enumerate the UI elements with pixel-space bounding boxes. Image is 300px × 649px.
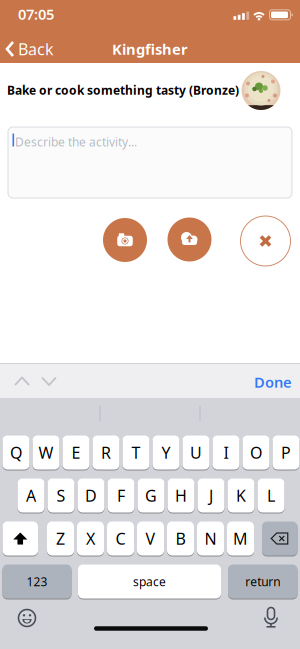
button[interactable]: O bbox=[242, 435, 269, 470]
button[interactable]: K bbox=[227, 478, 254, 513]
button[interactable]: Y bbox=[152, 435, 179, 470]
staticText: R bbox=[101, 442, 111, 463]
staticText: Back bbox=[18, 38, 54, 60]
button[interactable]: I bbox=[212, 435, 239, 470]
staticText: C bbox=[115, 528, 125, 549]
staticText: T bbox=[131, 442, 140, 463]
button[interactable]: return bbox=[228, 564, 297, 599]
staticText: Y bbox=[161, 442, 170, 463]
button[interactable]: J bbox=[197, 478, 224, 513]
button[interactable]: T bbox=[122, 435, 149, 470]
button[interactable]: Done bbox=[254, 372, 292, 392]
staticText: D bbox=[85, 485, 97, 506]
button[interactable] bbox=[261, 608, 281, 628]
staticText: Describe the activity... bbox=[15, 134, 137, 150]
button[interactable]: R bbox=[92, 435, 119, 470]
button[interactable]: H bbox=[167, 478, 194, 513]
staticText: space bbox=[133, 573, 166, 589]
staticText: A bbox=[26, 485, 36, 506]
staticText: U bbox=[190, 442, 202, 463]
staticText: J bbox=[209, 485, 213, 506]
button[interactable] bbox=[167, 217, 211, 261]
button[interactable]: A bbox=[17, 478, 44, 513]
button[interactable]: 123 bbox=[2, 564, 71, 599]
button[interactable]: Back bbox=[0, 24, 62, 63]
button[interactable]: U bbox=[182, 435, 209, 470]
button[interactable]: D bbox=[77, 478, 104, 513]
button[interactable]: B bbox=[167, 521, 194, 556]
button[interactable] bbox=[41, 376, 57, 386]
staticText: Q bbox=[10, 442, 22, 463]
button[interactable]: L bbox=[257, 478, 284, 513]
staticText: B bbox=[175, 528, 185, 549]
staticText: Done bbox=[254, 372, 292, 392]
button[interactable]: X bbox=[77, 521, 104, 556]
staticText: 07:05 bbox=[18, 4, 54, 24]
staticText: Bake or cook something tasty (Bronze) bbox=[7, 82, 239, 98]
button[interactable] bbox=[103, 218, 147, 262]
staticText: K bbox=[236, 485, 246, 506]
button[interactable] bbox=[14, 376, 30, 386]
staticText: F bbox=[117, 485, 125, 506]
staticText: L bbox=[267, 485, 275, 506]
staticText: V bbox=[145, 528, 155, 549]
button[interactable]: C bbox=[107, 521, 134, 556]
button[interactable] bbox=[262, 521, 297, 556]
button[interactable] bbox=[17, 608, 37, 628]
staticText: P bbox=[281, 442, 291, 463]
button[interactable]: V bbox=[137, 521, 164, 556]
button[interactable]: M bbox=[227, 521, 254, 556]
staticText: E bbox=[71, 442, 80, 463]
button[interactable]: Z bbox=[47, 521, 74, 556]
staticText: X bbox=[86, 528, 95, 549]
staticText: N bbox=[204, 528, 216, 549]
staticText: Z bbox=[56, 528, 65, 549]
staticText: return bbox=[245, 573, 280, 589]
button[interactable]: E bbox=[62, 435, 89, 470]
button[interactable]: N bbox=[197, 521, 224, 556]
staticText: M bbox=[233, 528, 248, 549]
button[interactable]: Q bbox=[2, 435, 29, 470]
button[interactable] bbox=[240, 216, 290, 266]
button[interactable]: P bbox=[272, 435, 299, 470]
staticText: G bbox=[145, 485, 157, 506]
button[interactable]: F bbox=[107, 478, 134, 513]
staticText: I bbox=[223, 442, 228, 463]
button[interactable] bbox=[2, 521, 38, 556]
staticText: W bbox=[38, 442, 53, 463]
staticText: S bbox=[56, 485, 65, 506]
staticText: O bbox=[250, 442, 262, 463]
button[interactable]: space bbox=[78, 564, 221, 599]
staticText: 123 bbox=[26, 573, 47, 589]
button[interactable]: W bbox=[32, 435, 59, 470]
staticText: Kingfisher bbox=[112, 39, 188, 59]
staticText: H bbox=[175, 485, 187, 506]
button[interactable]: S bbox=[47, 478, 74, 513]
button[interactable]: G bbox=[137, 478, 164, 513]
